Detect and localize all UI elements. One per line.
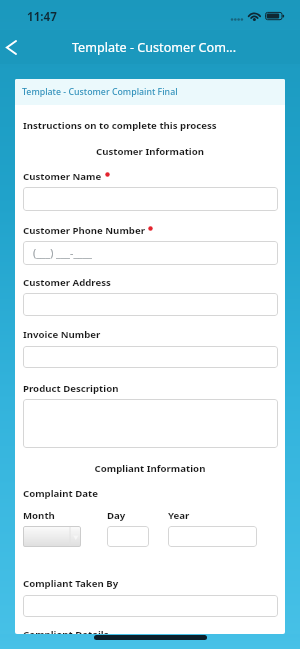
staticText: Customer Name	[23, 170, 102, 183]
button[interactable]: Text field	[168, 526, 257, 547]
staticText: Day	[107, 509, 126, 522]
button[interactable]: Text field	[23, 399, 278, 448]
staticText: Instructions on to complete this process	[23, 119, 217, 132]
button[interactable]: Text field	[23, 293, 278, 316]
button[interactable]: Select month	[23, 526, 81, 547]
button[interactable]: Text field	[23, 346, 278, 368]
staticText: Template - Customer Complaint Final	[22, 86, 178, 98]
staticText: Customer Address	[23, 276, 111, 289]
staticText: Customer Phone Number	[23, 224, 145, 237]
button[interactable]: Text field	[107, 526, 149, 547]
staticText: Complaint Date	[23, 487, 98, 500]
staticText: 11:47	[27, 9, 57, 25]
staticText: (___) ___-____	[33, 246, 93, 260]
staticText: Product Description	[23, 382, 119, 395]
button[interactable]: Text field	[23, 595, 278, 617]
staticText: Customer Information	[15, 145, 285, 158]
button[interactable]: Back	[0, 30, 30, 64]
staticText: Template - Customer Com...	[72, 39, 237, 56]
staticText: Compliant Details	[23, 628, 109, 641]
staticText: Year	[168, 509, 190, 522]
staticText: Compliant Taken By	[23, 577, 119, 590]
staticText: Invoice Number	[23, 328, 101, 341]
staticText: Month	[23, 509, 55, 522]
button[interactable]: Text field	[23, 187, 278, 211]
staticText: Compliant Information	[15, 462, 285, 475]
button[interactable]: Text field	[23, 241, 278, 265]
